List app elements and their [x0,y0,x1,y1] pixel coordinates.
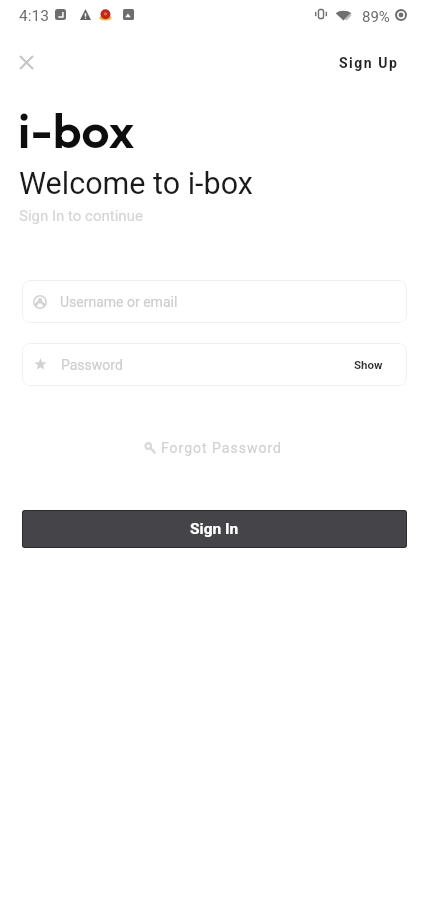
staticText: Sign In [190,520,239,538]
button[interactable]: Close [8,44,44,80]
staticText: Sign Up [339,55,399,71]
staticText: Forgot Password [161,440,282,456]
staticText: Sign In to continue [19,207,143,225]
button[interactable]: Forgot Password [0,435,427,461]
staticText: i-box [18,99,135,161]
button[interactable]: Sign In [22,510,407,548]
staticText: Password [61,357,123,373]
staticText: Welcome to i-box [19,166,253,202]
button[interactable]: Password [22,343,407,386]
button[interactable]: Show [352,343,385,386]
button[interactable]: Sign Up [339,55,399,71]
staticText: 89% [362,8,390,26]
staticText: Show [354,358,383,371]
staticText: 4:13 [19,7,49,25]
staticText: Username or email [60,294,178,310]
button[interactable]: Username or email [22,280,407,323]
